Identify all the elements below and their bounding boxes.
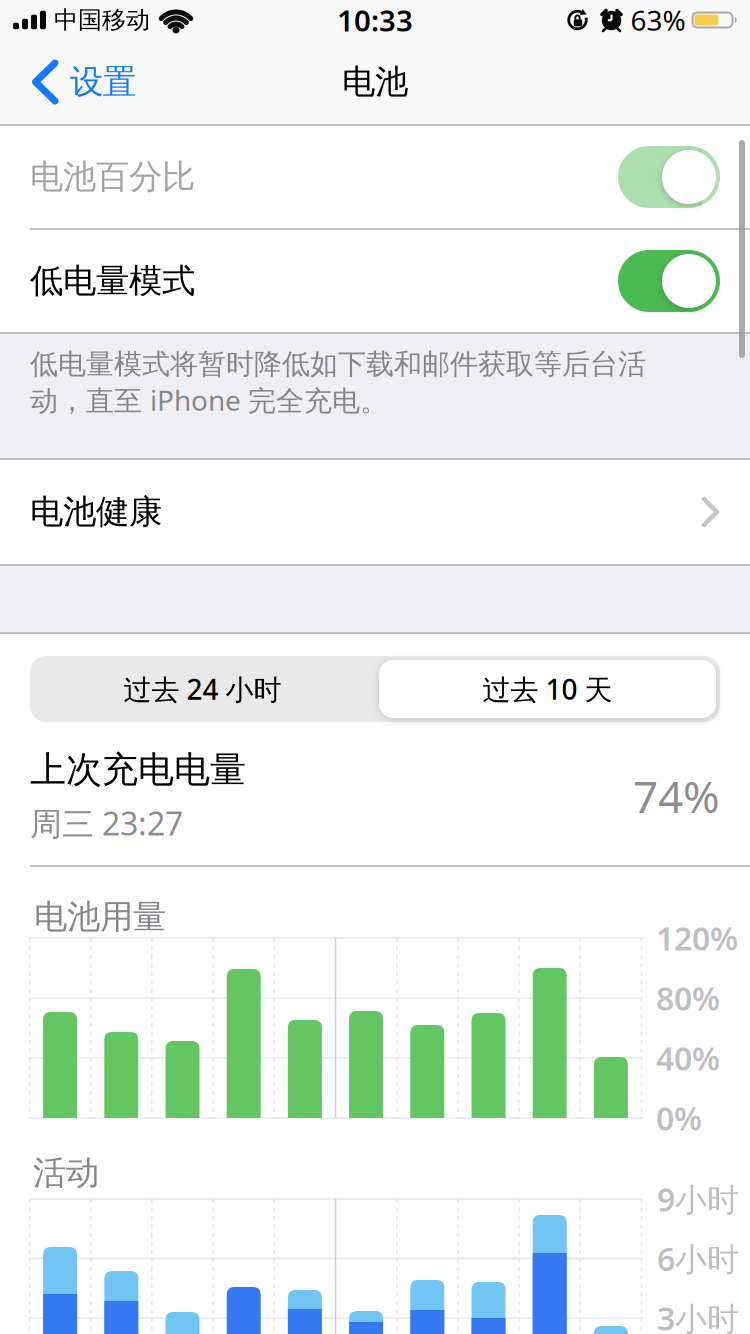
- staticText: 电池: [342, 61, 408, 102]
- staticText: 周三 23:27: [30, 802, 183, 844]
- staticText: 0%: [656, 1097, 702, 1139]
- staticText: 电池百分比: [30, 156, 195, 197]
- staticText: 活动: [33, 1152, 99, 1193]
- staticText: 中国移动: [54, 5, 150, 35]
- staticText: 40%: [656, 1037, 720, 1079]
- staticText: 120%: [656, 917, 738, 959]
- button[interactable]: 低电量模式: [0, 230, 750, 332]
- staticText: 9小时: [657, 1178, 739, 1220]
- staticText: 过去 10 天: [482, 670, 612, 708]
- staticText: 6小时: [657, 1237, 739, 1280]
- staticText: 低电量模式: [30, 260, 195, 301]
- staticText: 低电量模式将暂时降低如下载和邮件获取等后台活: [30, 347, 646, 381]
- staticText: 动，直至 iPhone 完全充电。: [30, 381, 388, 419]
- staticText: 80%: [656, 977, 720, 1019]
- staticText: 63%: [630, 1, 685, 39]
- staticText: 上次充电电量: [30, 748, 246, 792]
- staticText: 过去 24 小时: [123, 670, 281, 708]
- staticText: 设置: [70, 61, 136, 102]
- staticText: 10:33: [337, 0, 413, 39]
- staticText: 74%: [633, 767, 720, 825]
- staticText: 电池健康: [30, 491, 162, 532]
- button[interactable]: 过去 24 小时: [30, 656, 375, 722]
- button[interactable]: 过去 10 天: [375, 656, 720, 722]
- button[interactable]: 返回设置: [0, 61, 136, 103]
- staticText: 3小时: [657, 1297, 739, 1334]
- button[interactable]: 电池健康: [0, 460, 750, 564]
- staticText: 电池用量: [34, 896, 166, 937]
- button[interactable]: 电池百分比: [0, 126, 750, 228]
